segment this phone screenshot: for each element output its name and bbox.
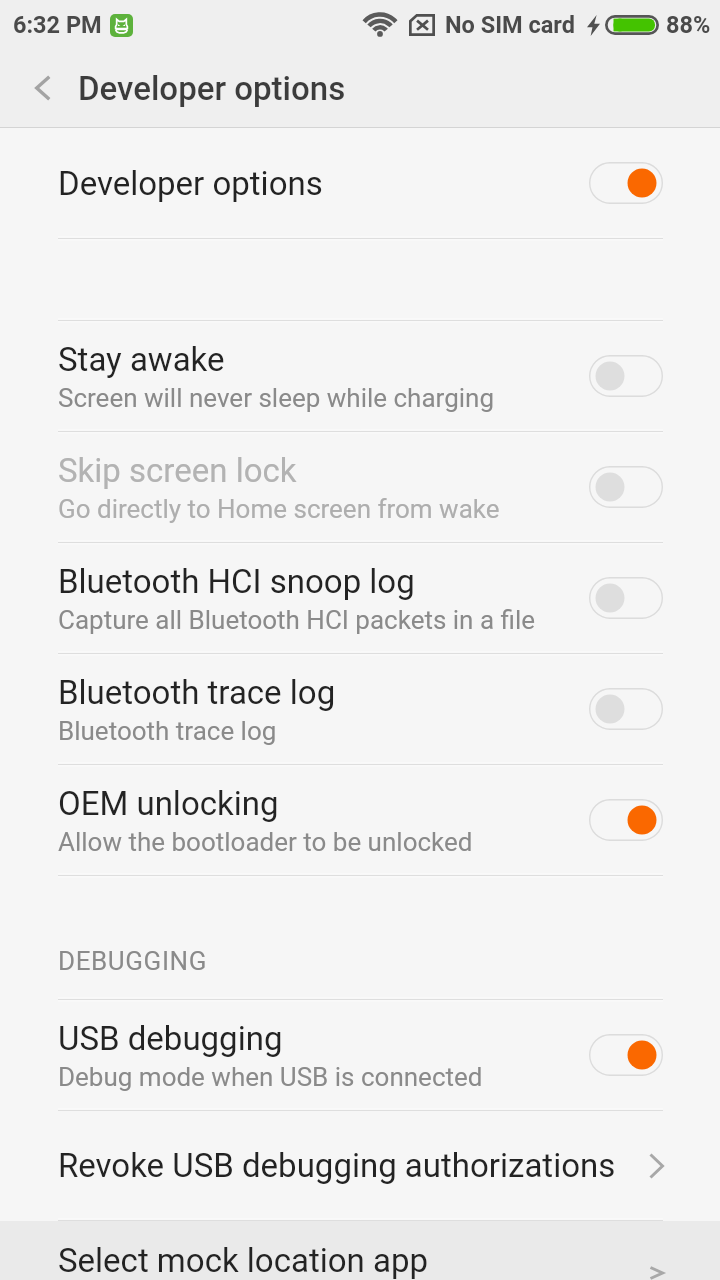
button[interactable]: Bluetooth trace log bbox=[0, 654, 720, 764]
button[interactable]: Skip screen lock bbox=[0, 432, 720, 542]
button[interactable]: Off bbox=[589, 577, 663, 619]
staticText: Capture all Bluetooth HCI packets in a f… bbox=[58, 605, 536, 635]
button[interactable]: On bbox=[589, 799, 663, 841]
button[interactable]: USB debugging bbox=[0, 1000, 720, 1110]
button[interactable]: Off bbox=[589, 355, 663, 397]
staticText: OEM unlocking bbox=[58, 784, 279, 823]
staticText: Revoke USB debugging authorizations bbox=[58, 1146, 649, 1185]
staticText: 88% bbox=[666, 11, 711, 39]
staticText: USB debugging bbox=[58, 1019, 283, 1058]
button[interactable]: Developer options bbox=[0, 128, 720, 238]
button[interactable]: On bbox=[589, 162, 663, 204]
button[interactable]: Revoke USB debugging authorizations bbox=[0, 1111, 720, 1220]
staticText: No SIM card bbox=[445, 11, 575, 39]
staticText: Bluetooth trace log bbox=[58, 673, 336, 712]
staticText: Stay awake bbox=[58, 340, 225, 379]
button[interactable]: Off bbox=[589, 688, 663, 730]
staticText: Go directly to Home screen from wake bbox=[58, 494, 500, 524]
staticText: Allow the bootloader to be unlocked bbox=[58, 827, 473, 857]
button[interactable]: Stay awake bbox=[0, 321, 720, 431]
staticText: Skip screen lock bbox=[58, 451, 297, 490]
staticText: DEBUGGING bbox=[58, 946, 208, 976]
staticText: Bluetooth HCI snoop log bbox=[58, 562, 415, 601]
staticText: Developer options bbox=[78, 69, 346, 108]
button[interactable]: Back bbox=[0, 50, 78, 127]
staticText: Bluetooth trace log bbox=[58, 716, 277, 746]
staticText: Developer options bbox=[58, 164, 323, 203]
staticText: 6:32 PM bbox=[13, 11, 102, 39]
staticText: Screen will never sleep while charging bbox=[58, 383, 495, 413]
button[interactable]: OEM unlocking bbox=[0, 765, 720, 875]
button[interactable]: Select mock location app bbox=[0, 1221, 720, 1280]
staticText: Debug mode when USB is connected bbox=[58, 1062, 483, 1092]
button[interactable]: Off bbox=[589, 466, 663, 508]
button[interactable]: Bluetooth HCI snoop log bbox=[0, 543, 720, 653]
staticText: Select mock location app bbox=[58, 1241, 428, 1280]
button[interactable]: On bbox=[589, 1034, 663, 1076]
